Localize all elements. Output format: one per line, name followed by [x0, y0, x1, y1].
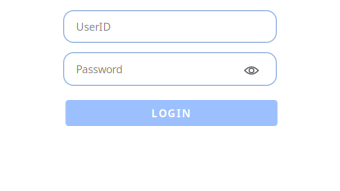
staticText: UserID [76, 19, 111, 34]
button[interactable]: UserID [63, 10, 277, 43]
staticText: Password [76, 62, 123, 76]
staticText: LOGIN [151, 106, 191, 120]
button[interactable]: Password [63, 52, 244, 86]
button[interactable]: Show password [244, 52, 277, 86]
button[interactable]: LOGIN [62, 100, 277, 126]
